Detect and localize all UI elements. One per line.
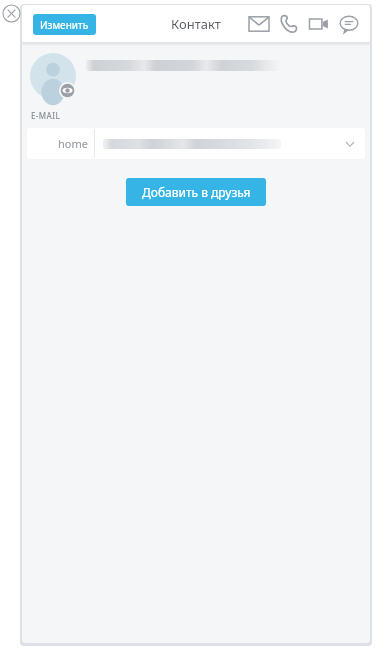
button[interactable]: Email	[246, 11, 272, 37]
staticText: Добавить в друзья	[142, 184, 251, 200]
button[interactable]: Изменить	[33, 14, 96, 35]
button[interactable]: Visibility	[59, 82, 76, 99]
staticText: Контакт	[171, 15, 221, 33]
button[interactable]: Close	[2, 4, 21, 23]
button[interactable]: Call	[276, 11, 302, 37]
button[interactable]: home	[27, 128, 365, 159]
staticText: home	[58, 136, 88, 151]
button[interactable]: Message	[336, 11, 362, 37]
staticText: E-MAIL	[31, 110, 61, 121]
button[interactable]: Video call	[306, 11, 332, 37]
button[interactable]: Добавить в друзья	[126, 178, 266, 206]
staticText: Изменить	[40, 18, 89, 32]
